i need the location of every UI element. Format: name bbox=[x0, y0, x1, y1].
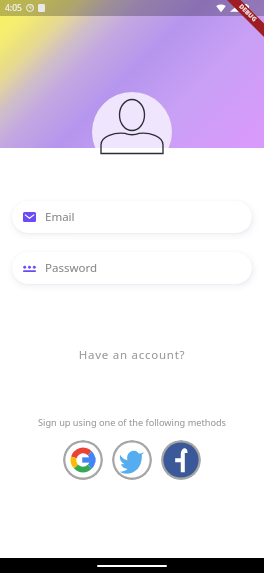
button[interactable]: Facebook bbox=[161, 440, 201, 480]
button[interactable]: Password bbox=[12, 252, 252, 284]
staticText: DEBUG bbox=[237, 2, 259, 24]
staticText: Sign up using one of the following metho… bbox=[0, 416, 264, 429]
staticText: Password bbox=[45, 260, 98, 276]
button[interactable]: Email bbox=[12, 201, 252, 233]
staticText: Have an account? bbox=[0, 347, 264, 363]
staticText: Email bbox=[45, 209, 75, 225]
button[interactable]: Google bbox=[63, 440, 103, 480]
staticText: 4:05 bbox=[5, 2, 22, 14]
button[interactable]: Twitter bbox=[112, 440, 152, 480]
